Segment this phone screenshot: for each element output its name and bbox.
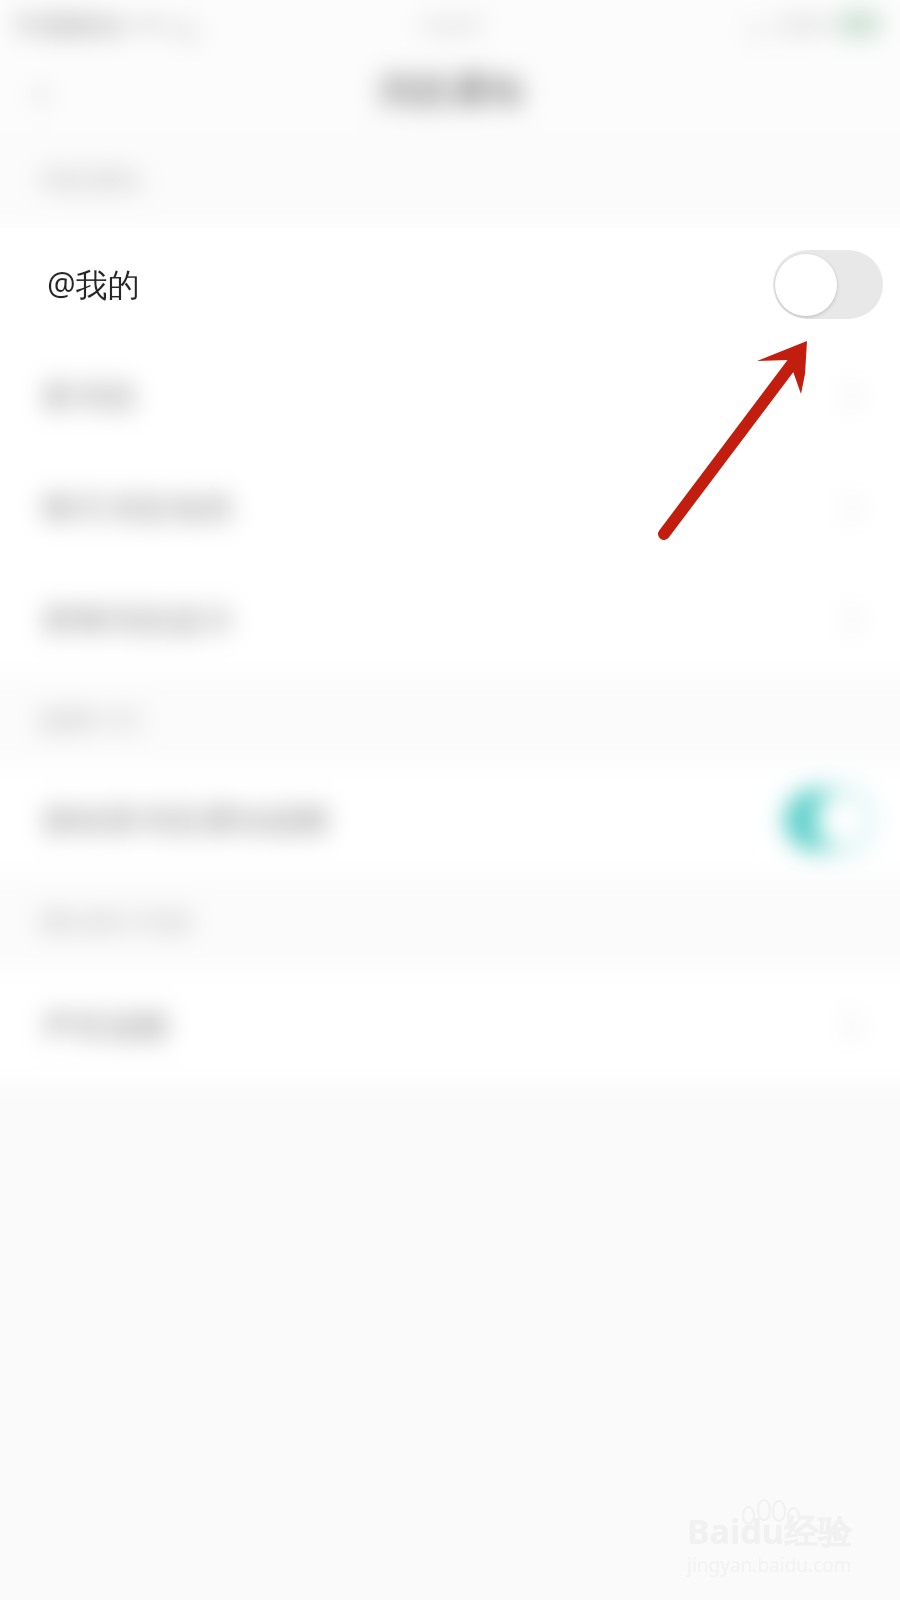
staticText: 新消息 <box>42 376 138 416</box>
staticText: Baidu经验 <box>687 1508 852 1554</box>
button[interactable]: 聊天消息免扰 <box>0 452 900 564</box>
button[interactable]: @我的 <box>0 228 900 340</box>
staticText: 群聊消息提示 <box>42 600 234 640</box>
button[interactable]: 接收新消息通知提醒 <box>0 764 900 876</box>
staticText: 中国移动 •••• △ <box>14 6 198 43</box>
button[interactable]: Toggle status bar alerts <box>785 789 873 851</box>
staticText: 接收新消息通知提醒 <box>42 800 330 840</box>
staticText: @我的 <box>47 262 140 306</box>
button[interactable]: 声音提醒 <box>0 970 900 1082</box>
button[interactable]: 群聊消息提示 <box>0 564 900 676</box>
staticText: 聊天消息免扰 <box>42 488 234 528</box>
staticText: 声音提醒 <box>42 1006 170 1046</box>
button[interactable]: 新消息 <box>0 340 900 452</box>
button[interactable]: Toggle @我的 notifications <box>773 250 883 319</box>
staticText: 提醒方式 <box>38 704 142 737</box>
staticText: △ 82% <box>747 7 829 41</box>
staticText: 消息通知 <box>376 67 524 114</box>
